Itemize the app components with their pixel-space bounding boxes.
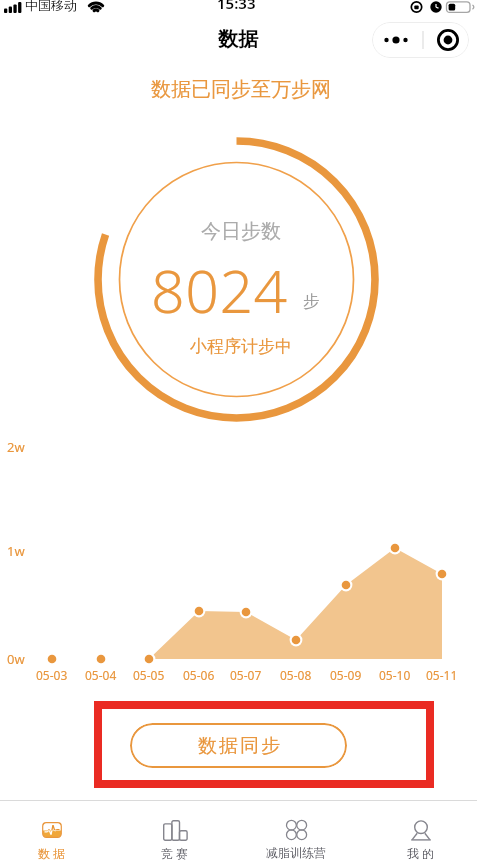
staticText: 05-05 (133, 667, 165, 683)
staticText: 2w (7, 438, 25, 456)
button[interactable]: 数据同步 (130, 723, 347, 768)
staticText: 步 (303, 291, 320, 312)
staticText: 数 据 (38, 845, 66, 861)
staticText: 数据同步 (197, 734, 281, 758)
staticText: 05-11 (426, 667, 458, 683)
staticText: 减脂训练营 (266, 845, 326, 860)
staticText: 05-09 (330, 667, 362, 683)
staticText: 05-04 (85, 667, 117, 683)
staticText: 数据 (218, 27, 258, 52)
staticText: 0w (7, 650, 25, 668)
staticText: 05-07 (230, 667, 262, 683)
staticText: 竞 赛 (161, 845, 189, 861)
button[interactable] (372, 22, 469, 58)
staticText: 15:33 (217, 0, 256, 13)
button[interactable]: 数 据 (7, 801, 97, 864)
staticText: 05-08 (280, 667, 312, 683)
staticText: 1w (7, 542, 25, 560)
staticText: 05-03 (36, 667, 68, 683)
staticText: 05-10 (379, 667, 411, 683)
staticText: 数据已同步至万步网 (151, 77, 331, 102)
staticText: 8024 (151, 250, 288, 330)
staticText: 我 的 (407, 845, 435, 861)
button[interactable]: 竞 赛 (130, 801, 220, 864)
staticText: 中国移动 (25, 0, 77, 13)
button[interactable]: 我 的 (376, 801, 466, 864)
button[interactable]: 减脂训练营 (251, 801, 341, 864)
staticText: 今日步数 (201, 219, 281, 244)
staticText: 05-06 (183, 667, 215, 683)
staticText: 小程序计步中 (190, 336, 292, 357)
